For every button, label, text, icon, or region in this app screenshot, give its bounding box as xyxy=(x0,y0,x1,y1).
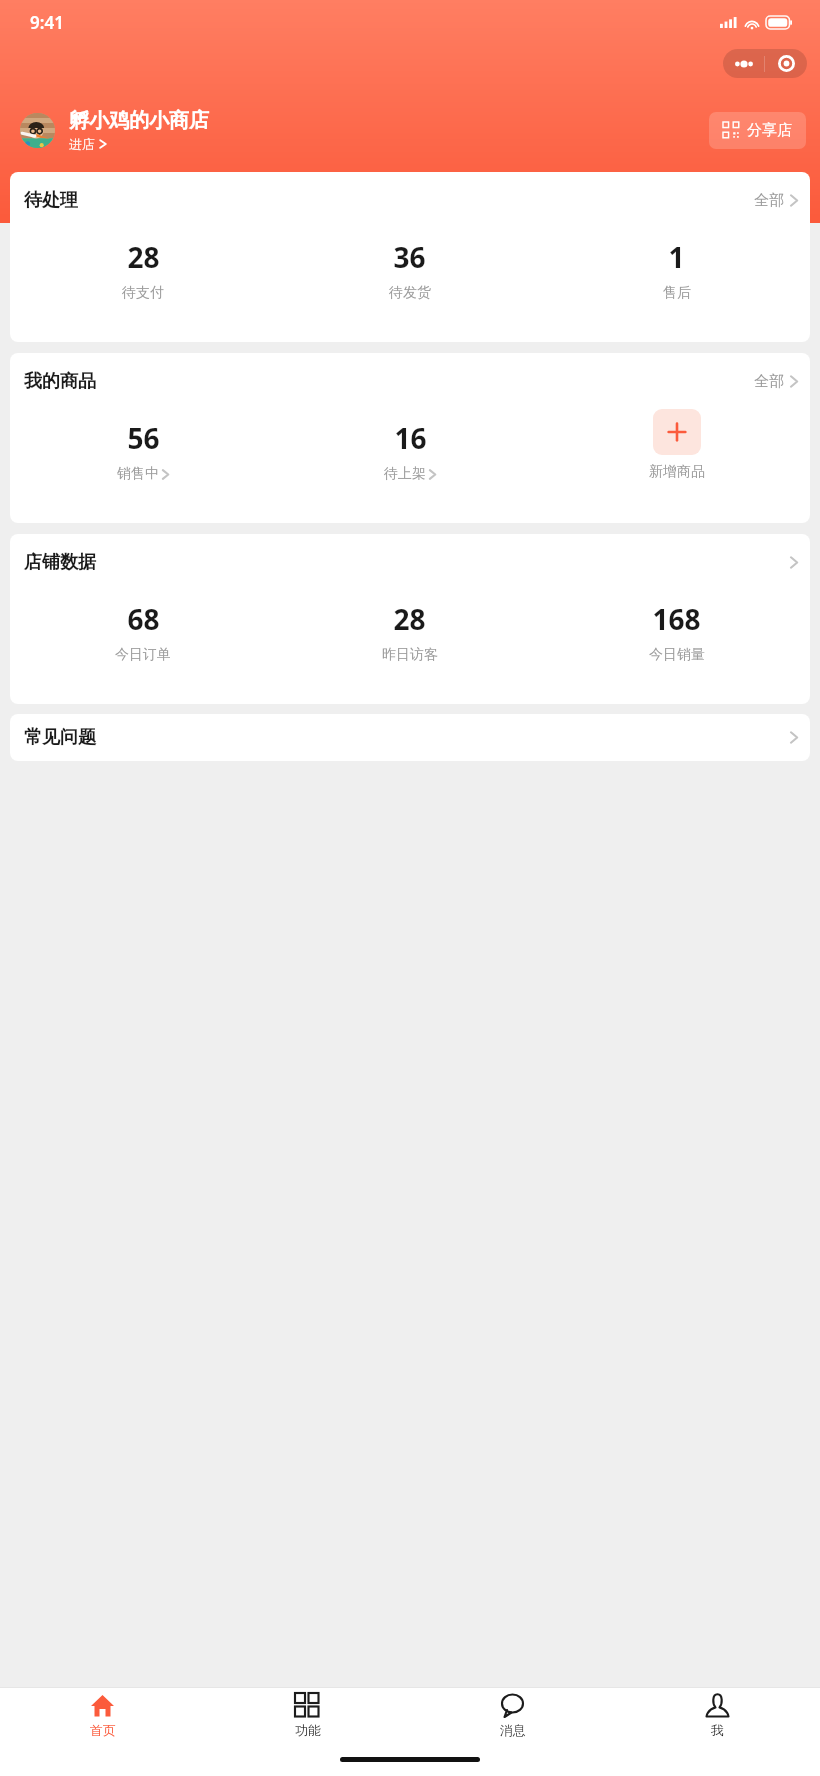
staticText: 售后 xyxy=(663,284,691,302)
button[interactable] xyxy=(20,113,55,148)
staticText: 消息 xyxy=(500,1722,526,1738)
button[interactable]: 待处理 xyxy=(10,172,810,214)
button[interactable]: 新增商品 xyxy=(543,409,810,481)
button[interactable]: 孵小鸡的小商店 xyxy=(69,108,709,152)
button[interactable]: 168 xyxy=(543,598,810,666)
staticText: 36 xyxy=(393,238,426,276)
button[interactable]: 常见问题 xyxy=(10,714,810,761)
staticText: 待上架 xyxy=(384,465,426,483)
staticText: 16 xyxy=(394,419,427,457)
staticText: 168 xyxy=(652,600,701,638)
staticText: 今日订单 xyxy=(115,646,171,664)
button[interactable]: 56 xyxy=(117,417,169,485)
staticText: 今日销量 xyxy=(649,646,705,664)
staticText: 新增商品 xyxy=(649,463,705,481)
staticText: 待支付 xyxy=(122,284,164,302)
staticText: 全部 xyxy=(754,372,784,391)
staticText: 孵小鸡的小商店 xyxy=(69,108,209,133)
staticText: 68 xyxy=(127,600,160,638)
button[interactable]: 功能 xyxy=(205,1688,410,1742)
staticText: 待发货 xyxy=(389,284,431,302)
button[interactable]: 分享店 xyxy=(709,112,806,149)
button[interactable]: 1 xyxy=(543,236,810,304)
staticText: 常见问题 xyxy=(24,726,96,749)
button[interactable]: 36 xyxy=(276,236,543,304)
button[interactable]: More xyxy=(723,49,764,78)
button[interactable]: 店铺数据 xyxy=(10,534,810,576)
staticText: 56 xyxy=(127,419,160,457)
button[interactable]: 我 xyxy=(615,1688,820,1742)
staticText: 我 xyxy=(711,1722,724,1738)
staticText: 进店 xyxy=(69,136,95,152)
button[interactable]: 16 xyxy=(384,417,436,485)
staticText: 功能 xyxy=(295,1722,321,1738)
staticText: 我的商品 xyxy=(24,370,96,393)
button[interactable]: 我的商品 xyxy=(10,353,810,395)
button[interactable]: 28 xyxy=(10,236,276,304)
button[interactable]: 消息 xyxy=(410,1688,615,1742)
button[interactable]: Close xyxy=(765,49,807,78)
button[interactable]: 68 xyxy=(10,598,276,666)
button[interactable]: 28 xyxy=(276,598,543,666)
staticText: 待处理 xyxy=(24,189,78,212)
staticText: 28 xyxy=(127,238,160,276)
staticText: 1 xyxy=(668,238,685,276)
staticText: 9:41 xyxy=(30,11,64,34)
button[interactable]: 首页 xyxy=(0,1688,205,1742)
staticText: 首页 xyxy=(90,1722,116,1738)
staticText: 全部 xyxy=(754,191,784,210)
staticText: 店铺数据 xyxy=(24,551,96,574)
staticText: 销售中 xyxy=(117,465,159,483)
staticText: 分享店 xyxy=(747,121,792,140)
staticText: 昨日访客 xyxy=(382,646,438,664)
staticText: 28 xyxy=(393,600,426,638)
